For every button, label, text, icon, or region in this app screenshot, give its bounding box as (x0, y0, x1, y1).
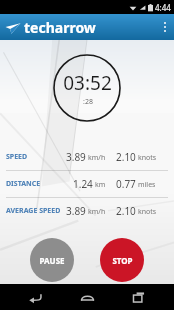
button[interactable]: Back (18, 284, 52, 310)
staticText: PAUSE (39, 255, 65, 266)
staticText: SPEED (6, 152, 28, 162)
staticText: 03:52 (63, 70, 112, 96)
button[interactable]: PAUSE (30, 238, 74, 282)
staticText: AVERAGE SPEED (6, 206, 61, 216)
staticText: km (95, 180, 106, 190)
staticText: 3.89 (66, 204, 86, 218)
button[interactable]: Recent apps (122, 284, 156, 310)
staticText: km/h (88, 207, 106, 217)
staticText: 2.10 (116, 150, 136, 164)
staticText: km/h (88, 153, 106, 163)
button[interactable]: SPEED (0, 144, 174, 170)
staticText: techarrow (24, 18, 96, 37)
button[interactable]: AVERAGE SPEED (0, 198, 174, 224)
staticText: 2.10 (116, 204, 136, 218)
button[interactable]: More options (156, 14, 174, 40)
staticText: 4:44 (155, 2, 171, 13)
staticText: 3.89 (66, 150, 86, 164)
staticText: :28 (83, 97, 93, 107)
button[interactable]: DISTANCE (0, 171, 174, 197)
staticText: 1.24 (73, 177, 93, 191)
staticText: STOP (112, 255, 133, 266)
staticText: 0.77 (116, 177, 136, 191)
staticText: knots (138, 207, 157, 217)
button[interactable]: Home (70, 284, 104, 310)
staticText: miles (138, 180, 156, 190)
button[interactable]: STOP (100, 238, 144, 282)
staticText: knots (138, 153, 157, 163)
staticText: DISTANCE (6, 179, 41, 189)
